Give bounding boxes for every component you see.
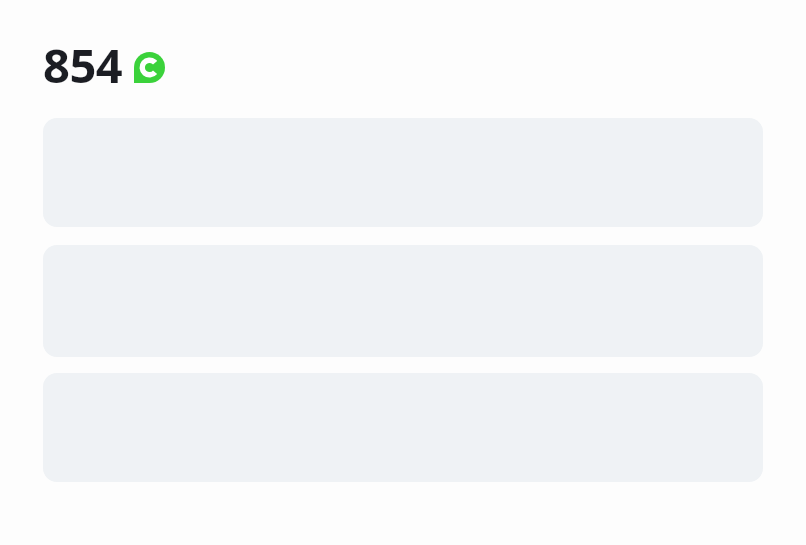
staticText: 854 <box>43 33 123 97</box>
other: Coins <box>134 52 165 83</box>
button[interactable]: 854 <box>43 31 173 99</box>
